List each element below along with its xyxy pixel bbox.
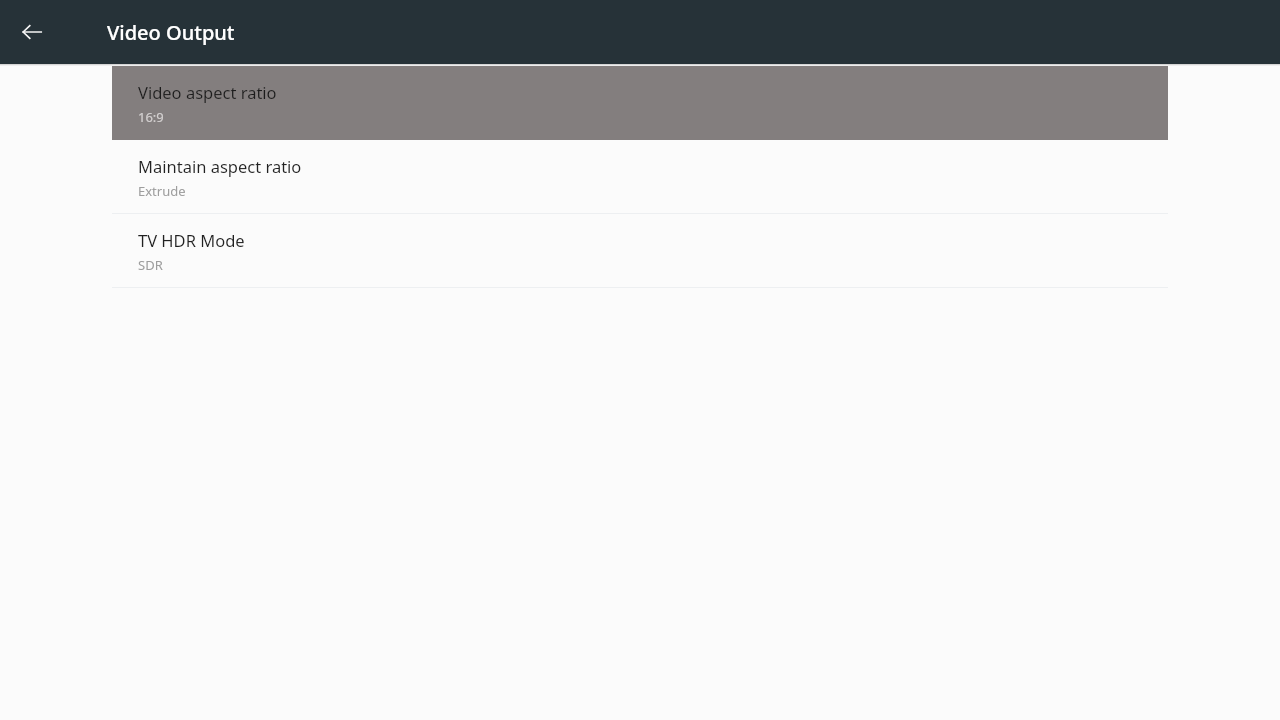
button[interactable]: Maintain aspect ratio <box>112 140 1168 214</box>
button[interactable]: TV HDR Mode <box>112 214 1168 288</box>
staticText: SDR <box>138 256 163 274</box>
staticText: Video Output <box>107 19 235 46</box>
button[interactable]: Back <box>12 12 52 52</box>
staticText: Extrude <box>138 182 186 200</box>
staticText: 16:9 <box>138 108 164 126</box>
staticText: Maintain aspect ratio <box>138 155 302 177</box>
button[interactable]: Video aspect ratio <box>112 66 1168 140</box>
staticText: Video aspect ratio <box>138 81 277 103</box>
staticText: TV HDR Mode <box>138 229 245 251</box>
